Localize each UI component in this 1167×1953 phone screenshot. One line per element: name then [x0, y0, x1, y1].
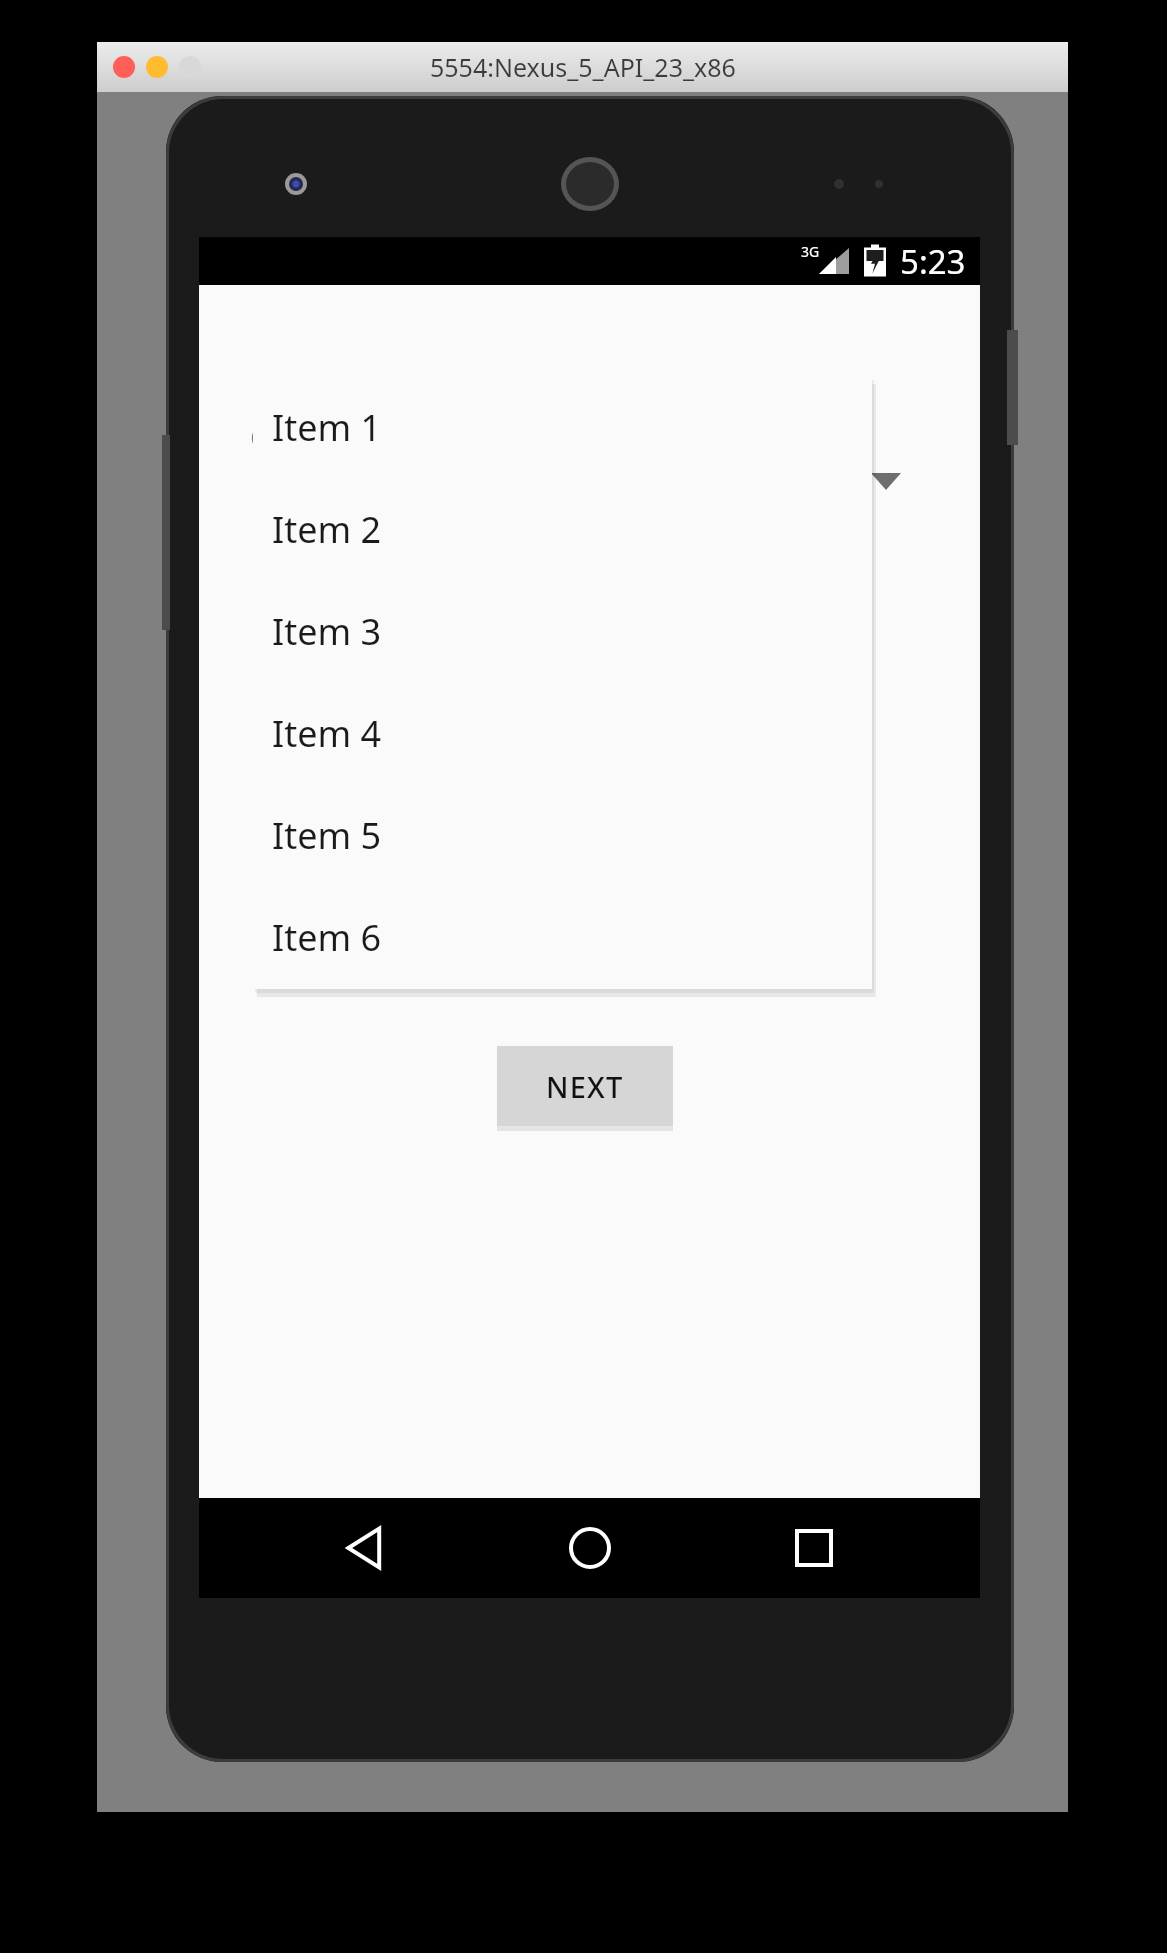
staticText: NEXT — [546, 1067, 624, 1106]
staticText: Category: — [250, 416, 391, 458]
button[interactable]: Item 1 — [253, 376, 872, 478]
button[interactable]: Item 4 — [253, 682, 872, 784]
button[interactable]: Recent apps — [756, 1498, 871, 1598]
button[interactable]: Window control — [146, 56, 168, 78]
button[interactable]: Item 6 — [253, 886, 872, 988]
staticText: 5554:Nexus_5_API_23_x86 — [430, 50, 736, 84]
button[interactable]: Item 3 — [253, 580, 872, 682]
button[interactable]: Back — [308, 1498, 423, 1598]
staticText: 5:23 — [900, 239, 966, 284]
button[interactable]: Home — [532, 1498, 647, 1598]
button[interactable]: Item 5 — [253, 784, 872, 886]
button[interactable]: Window control — [113, 56, 135, 78]
staticText: Item 3 — [272, 607, 382, 656]
staticText: Item 4 — [272, 709, 382, 758]
staticText: Item 2 — [272, 505, 382, 554]
button[interactable]: Item 2 — [253, 478, 872, 580]
staticText: Item 5 — [272, 811, 382, 860]
button[interactable]: NEXT — [497, 1046, 673, 1126]
staticText: Item 6 — [272, 913, 382, 962]
button[interactable]: Open category dropdown — [854, 450, 918, 512]
staticText: 3G — [801, 242, 820, 261]
staticText: Item 1 — [272, 403, 382, 452]
